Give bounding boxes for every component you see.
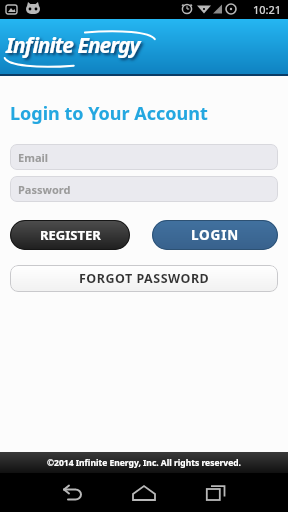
button[interactable]: REGISTER (10, 220, 130, 250)
staticText: Login to Your Account (10, 101, 208, 126)
staticText: FORGOT PASSWORD (79, 270, 210, 287)
staticText: Infinite Energy (6, 31, 140, 60)
staticText: REGISTER (40, 226, 101, 244)
button[interactable] (108, 473, 180, 512)
button[interactable] (180, 473, 252, 512)
staticText: ©2014 Infinite Energy, Inc. All rights r… (47, 457, 241, 469)
button[interactable]: Password (10, 176, 278, 202)
button[interactable]: FORGOT PASSWORD (10, 265, 278, 292)
staticText: 10:21 (253, 2, 282, 17)
button[interactable]: Email (10, 144, 278, 170)
staticText: Email (18, 150, 49, 165)
button[interactable]: LOGIN (152, 220, 278, 250)
button[interactable] (36, 473, 108, 512)
staticText: Password (18, 182, 71, 197)
staticText: LOGIN (191, 226, 239, 244)
